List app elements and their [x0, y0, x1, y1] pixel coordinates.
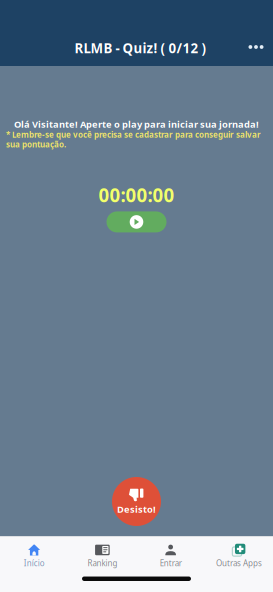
staticText: Olá Visitante! Aperte o play para inicia…	[14, 118, 259, 130]
button[interactable]: Outras Apps	[205, 541, 273, 571]
button[interactable]: Início	[0, 541, 68, 571]
button[interactable]: More options	[241, 33, 271, 61]
staticText: Outras Apps	[216, 558, 262, 568]
button[interactable]: Ranking	[68, 541, 136, 571]
staticText: Início	[24, 558, 45, 568]
staticText: Entrar	[160, 558, 182, 568]
button[interactable]: Entrar	[136, 541, 205, 571]
staticText: RLMB - Quiz! ( 0/12 )	[74, 39, 206, 57]
staticText: Ranking	[87, 558, 117, 568]
staticText: * Lembre-se que você precisa se cadastra…	[6, 129, 261, 150]
button[interactable]: Desisto!	[112, 477, 161, 526]
staticText: 00:00:00	[98, 183, 174, 207]
staticText: Desisto!	[117, 503, 156, 515]
button[interactable]: Play	[106, 211, 166, 232]
